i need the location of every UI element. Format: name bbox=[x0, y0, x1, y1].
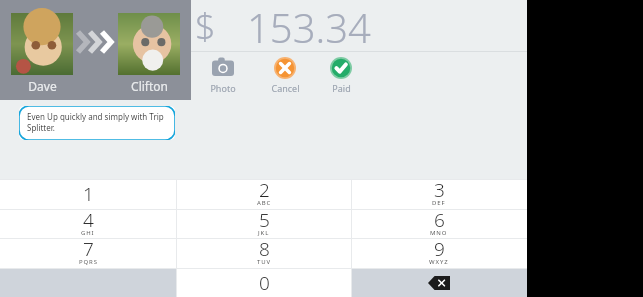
staticText: 0 bbox=[259, 270, 270, 296]
staticText: MNO bbox=[430, 229, 448, 237]
button[interactable]: 8 bbox=[176, 238, 352, 268]
staticText: 6 bbox=[434, 207, 445, 233]
staticText: $ bbox=[195, 2, 216, 51]
staticText: WXYZ bbox=[429, 258, 449, 266]
button[interactable]: Mark paid bbox=[318, 57, 364, 97]
staticText: 7 bbox=[83, 236, 94, 262]
staticText: 4 bbox=[83, 207, 94, 233]
staticText: Dave bbox=[28, 78, 57, 94]
button[interactable]: Even Up quickly and simply with Trip Spl… bbox=[19, 106, 175, 140]
staticText: Clifton bbox=[131, 78, 168, 94]
button[interactable]: 6 bbox=[351, 209, 527, 239]
button[interactable]: 5 bbox=[176, 209, 352, 239]
button[interactable]: 7 bbox=[0, 238, 176, 268]
button[interactable]: Take photo bbox=[200, 57, 246, 97]
button[interactable]: 2 bbox=[176, 179, 352, 209]
staticText: 2 bbox=[259, 177, 270, 203]
staticText: Photo bbox=[210, 82, 236, 94]
staticText: Even Up quickly and simply with Trip Spl… bbox=[27, 111, 164, 133]
staticText: ABC bbox=[257, 199, 272, 207]
staticText: 1 bbox=[83, 181, 94, 207]
button[interactable]: 0 bbox=[176, 268, 352, 297]
button[interactable]: 4 bbox=[0, 209, 176, 239]
staticText: Paid bbox=[332, 82, 351, 94]
staticText: 3 bbox=[434, 177, 445, 203]
button[interactable]: Cancel bbox=[262, 57, 308, 97]
staticText: TUV bbox=[257, 258, 272, 266]
staticText: 153.34 bbox=[247, 0, 371, 54]
button[interactable]: 3 bbox=[351, 179, 527, 209]
button[interactable]: Dave bbox=[0, 0, 191, 100]
staticText: DEF bbox=[432, 199, 446, 207]
button[interactable] bbox=[0, 268, 176, 297]
button[interactable]: Backspace bbox=[351, 268, 527, 297]
staticText: 5 bbox=[259, 207, 270, 233]
staticText: 9 bbox=[434, 236, 445, 262]
staticText: Cancel bbox=[271, 82, 300, 94]
button[interactable]: 1 bbox=[0, 179, 176, 209]
staticText: PQRS bbox=[79, 258, 98, 266]
staticText: JKL bbox=[258, 229, 270, 237]
button[interactable]: 9 bbox=[351, 238, 527, 268]
staticText: 8 bbox=[259, 236, 270, 262]
staticText: GHI bbox=[81, 229, 95, 237]
